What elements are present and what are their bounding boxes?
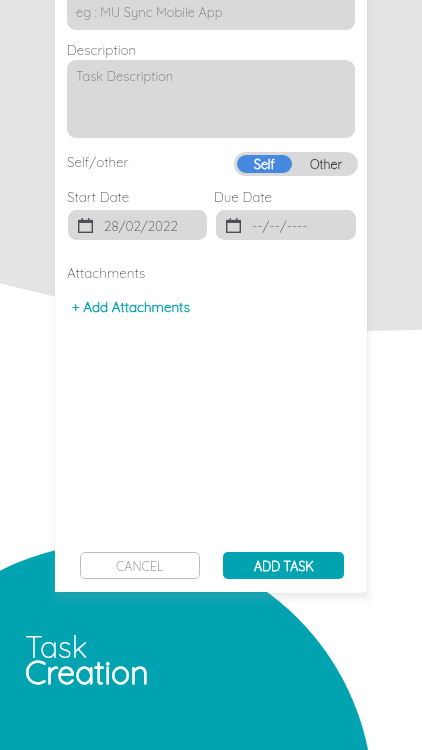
staticText: Attachments [67, 264, 146, 281]
button[interactable]: Task Description [67, 60, 355, 138]
button[interactable]: Pick date [216, 210, 356, 240]
staticText: Task Description [76, 68, 174, 84]
staticText: Self [254, 156, 275, 172]
other: Pick date [78, 218, 93, 233]
button[interactable]: Self [237, 155, 292, 173]
staticText: eg : MU Sync Mobile App [76, 4, 223, 20]
button[interactable]: CANCEL [80, 552, 200, 579]
staticText: Start Date [67, 188, 130, 205]
staticText: + Add Attachments [72, 298, 190, 315]
other: Pick date [226, 218, 241, 233]
staticText: CANCEL [116, 558, 164, 574]
staticText: Description [67, 41, 137, 58]
button[interactable]: eg : MU Sync Mobile App [67, 0, 355, 30]
button[interactable]: + Add Attachments [67, 295, 195, 318]
staticText: Self/other [67, 153, 129, 170]
button[interactable]: ADD TASK [223, 552, 344, 579]
button[interactable]: Other [295, 152, 358, 176]
staticText: Due Date [214, 188, 272, 205]
staticText: ADD TASK [254, 558, 314, 574]
button[interactable]: Pick date [68, 210, 207, 240]
staticText: Other [310, 156, 343, 172]
staticText: 28/02/2022 [104, 217, 178, 234]
staticText: --/--/---- [252, 217, 308, 234]
staticText: Creation [25, 652, 149, 692]
staticText: Task [25, 628, 88, 666]
